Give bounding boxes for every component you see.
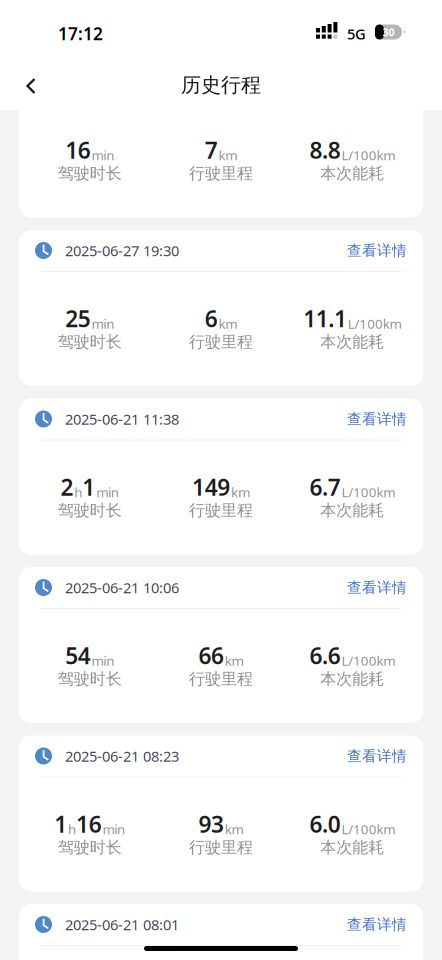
staticText: min [96, 483, 119, 501]
staticText: 149 [192, 472, 230, 502]
staticText: 5G [347, 24, 366, 43]
staticText: min [92, 146, 114, 164]
staticText: km [218, 315, 237, 332]
button[interactable]: 2025-06-21 10:06 [19, 567, 423, 723]
staticText: 驾驶时长 [58, 837, 122, 857]
staticText: 7 [205, 135, 218, 165]
staticText: 历史行程 [181, 73, 261, 97]
staticText: 查看详情 [347, 915, 407, 933]
staticText: 54 [65, 640, 91, 670]
staticText: 本次能耗 [320, 332, 384, 352]
staticText: 行驶里程 [189, 669, 253, 689]
staticText: 16 [76, 809, 102, 839]
staticText: 驾驶时长 [58, 163, 122, 183]
staticText: 本次能耗 [320, 163, 384, 183]
button[interactable]: 返回 [0, 50, 58, 104]
staticText: 查看详情 [347, 410, 407, 428]
staticText: 本次能耗 [320, 500, 384, 520]
staticText: 驾驶时长 [58, 332, 122, 352]
staticText: L/100km [341, 483, 395, 501]
staticText: min [92, 315, 114, 332]
staticText: 11.1 [303, 303, 347, 333]
staticText: L/100km [348, 315, 401, 332]
staticText: h [74, 483, 82, 501]
staticText: 驾驶时长 [58, 500, 122, 520]
staticText: 8.8 [309, 135, 341, 165]
staticText: 本次能耗 [320, 669, 384, 689]
staticText: 行驶里程 [189, 163, 253, 183]
button[interactable]: 2025-06-27 19:30 [19, 230, 423, 386]
staticText: 17:12 [58, 22, 103, 45]
staticText: 1 [82, 472, 95, 502]
staticText: 查看详情 [347, 578, 407, 596]
staticText: 2 [61, 472, 74, 502]
staticText: 驾驶时长 [58, 669, 122, 689]
staticText: min [92, 652, 114, 669]
staticText: km [225, 652, 244, 669]
staticText: 6.7 [309, 472, 341, 502]
staticText: 2025-06-21 08:01 [65, 915, 179, 934]
staticText: 25 [65, 303, 91, 333]
staticText: 查看详情 [347, 241, 407, 259]
staticText: 2025-06-21 11:38 [65, 409, 179, 429]
staticText: km [225, 820, 244, 838]
staticText: 2025-06-21 10:06 [65, 578, 179, 597]
button[interactable]: 查看详情 [347, 578, 407, 596]
staticText: 2025-06-21 08:23 [65, 746, 179, 766]
staticText: 6.6 [309, 640, 341, 670]
staticText: 行驶里程 [189, 500, 253, 520]
button[interactable]: 查看详情 [347, 241, 407, 259]
staticText: 66 [198, 640, 224, 670]
staticText: 2025-06-27 19:30 [65, 241, 179, 260]
button[interactable]: 2025-06-21 11:38 [19, 398, 423, 554]
button[interactable]: 查看详情 [347, 747, 407, 765]
staticText: km [218, 146, 237, 164]
staticText: L/100km [341, 820, 395, 838]
staticText: min [102, 820, 125, 838]
staticText: 6 [205, 303, 218, 333]
staticText: 查看详情 [347, 747, 407, 765]
staticText: km [231, 483, 250, 501]
staticText: L/100km [341, 652, 395, 669]
staticText: h [68, 820, 76, 838]
staticText: 1 [54, 809, 67, 839]
button[interactable]: 2025-06-21 08:23 [19, 735, 423, 891]
staticText: 行驶里程 [189, 837, 253, 857]
button[interactable]: 2025-06-27 20:07 [19, 61, 423, 217]
button[interactable]: 查看详情 [347, 915, 407, 933]
staticText: L/100km [341, 146, 395, 164]
staticText: 本次能耗 [320, 837, 384, 857]
staticText: 行驶里程 [189, 332, 253, 352]
button[interactable]: 查看详情 [347, 410, 407, 428]
button[interactable]: 2025-06-21 08:01 [19, 904, 423, 960]
staticText: 30 [382, 25, 394, 39]
staticText: 16 [65, 135, 91, 165]
staticText: 93 [198, 809, 224, 839]
staticText: 6.0 [309, 809, 341, 839]
